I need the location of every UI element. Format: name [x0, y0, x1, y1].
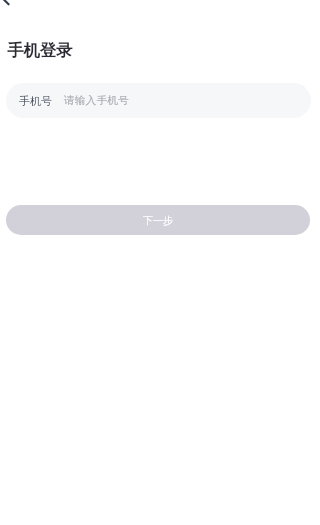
button[interactable]: 下一步 — [6, 205, 310, 235]
staticText: 手机登录 — [7, 40, 73, 61]
staticText: 请输入手机号 — [64, 94, 129, 108]
staticText: 手机号 — [19, 94, 52, 108]
button[interactable]: Back — [0, 0, 26, 20]
button[interactable]: 手机号 — [6, 83, 311, 118]
staticText: 下一步 — [143, 214, 173, 227]
